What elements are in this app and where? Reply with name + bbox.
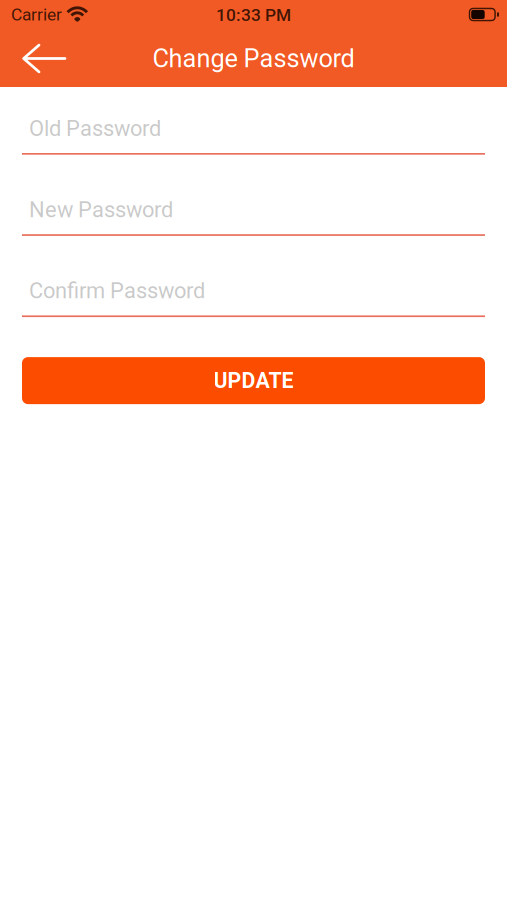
button[interactable]: UPDATE [22, 357, 485, 404]
staticText: UPDATE [213, 368, 293, 393]
staticText: Change Password [152, 44, 354, 73]
staticText: New Password [29, 197, 173, 222]
staticText: Carrier [11, 4, 62, 25]
staticText: 10:33 PM [216, 5, 291, 25]
staticText: Confirm Password [29, 278, 205, 304]
staticText: Old Password [29, 116, 161, 141]
button[interactable]: Back [0, 33, 80, 83]
